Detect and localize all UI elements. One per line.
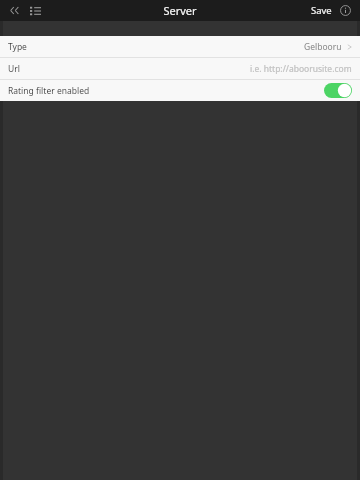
staticText: Rating filter enabled [8, 85, 90, 97]
button[interactable]: Rating filter enabled [0, 80, 360, 101]
staticText: Url [8, 63, 20, 75]
button[interactable]: Type [0, 36, 360, 57]
button[interactable]: Save [309, 1, 334, 20]
staticText: Type [8, 41, 27, 53]
staticText: i.e. http://aboorusite.com [250, 63, 352, 75]
button[interactable]: Info [337, 0, 353, 21]
button[interactable]: List [26, 0, 44, 21]
button[interactable]: Back [6, 0, 24, 21]
staticText: Save [311, 4, 332, 17]
staticText: Server [163, 3, 197, 18]
button[interactable]: Url [0, 58, 360, 79]
button[interactable]: Rating filter enabled toggle [324, 83, 352, 98]
staticText: Gelbooru [304, 41, 342, 53]
